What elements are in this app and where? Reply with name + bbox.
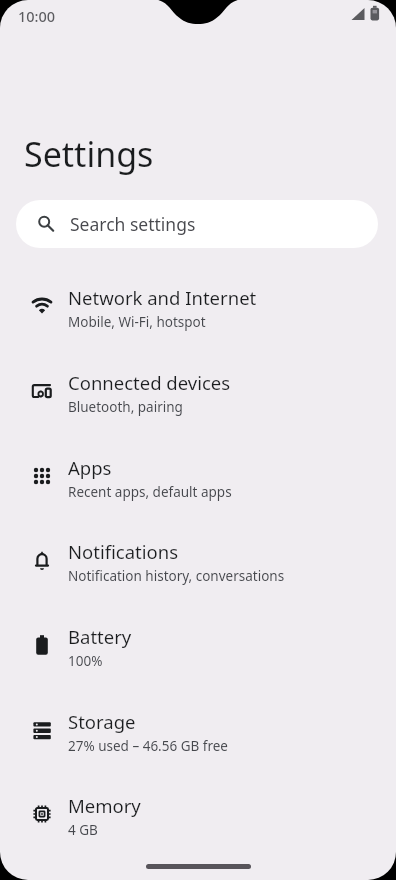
button[interactable]: Connected devices <box>0 349 396 433</box>
button[interactable]: Network and Internet <box>0 264 396 348</box>
staticText: Recent apps, default apps <box>68 483 232 501</box>
staticText: 100% <box>68 652 103 670</box>
button[interactable]: Search settings <box>16 200 378 248</box>
button[interactable]: Notifications <box>0 518 396 602</box>
staticText: 4 GB <box>68 821 98 839</box>
button[interactable]: Apps <box>0 434 396 518</box>
button[interactable]: Battery <box>0 603 396 687</box>
staticText: Mobile, Wi-Fi, hotspot <box>68 313 206 331</box>
staticText: 27% used – 46.56 GB free <box>68 737 228 755</box>
button[interactable]: Storage <box>0 688 396 772</box>
staticText: Battery <box>68 624 132 649</box>
staticText: Search settings <box>70 212 196 236</box>
staticText: 10:00 <box>18 6 56 26</box>
staticText: Connected devices <box>68 370 231 395</box>
button[interactable]: Memory <box>0 772 396 856</box>
staticText: Settings <box>24 131 154 177</box>
staticText: Network and Internet <box>68 285 257 310</box>
staticText: Notification history, conversations <box>68 567 285 585</box>
staticText: Bluetooth, pairing <box>68 398 183 416</box>
staticText: Notifications <box>68 539 179 564</box>
staticText: Storage <box>68 709 136 734</box>
staticText: Apps <box>68 455 112 480</box>
staticText: Memory <box>68 793 141 818</box>
